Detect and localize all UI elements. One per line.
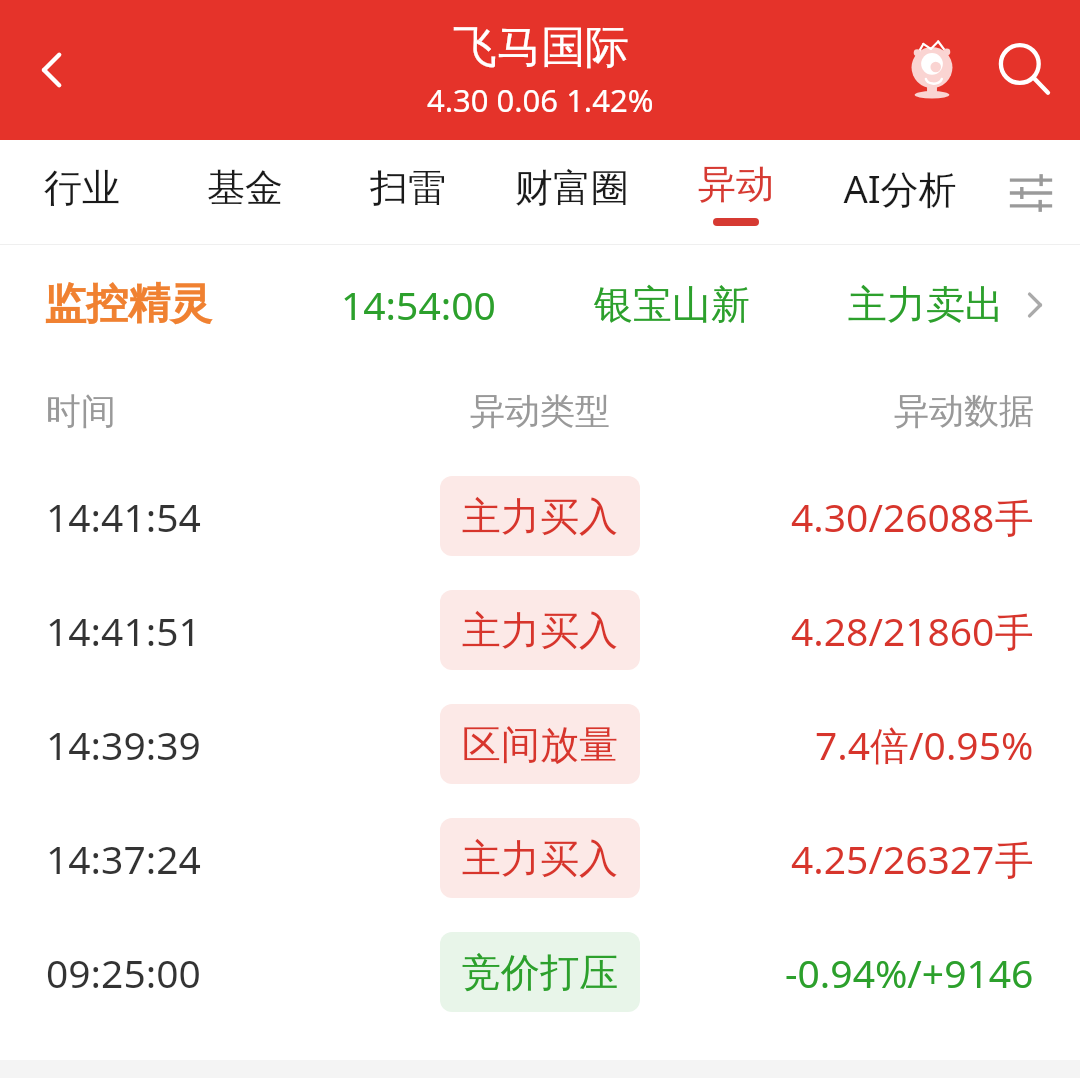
staticText: 4.30/26088手 — [791, 490, 1034, 543]
button[interactable]: 14:41:54 — [0, 459, 1080, 573]
staticText: 区间放量 — [462, 720, 618, 769]
staticText: 主力卖出 — [848, 280, 1004, 329]
staticText: 时间 — [46, 389, 116, 433]
staticText: 监控精灵 — [44, 278, 212, 331]
staticText: 飞马国际 — [453, 20, 629, 75]
button[interactable]: 09:25:00 — [0, 915, 1080, 1029]
button[interactable]: Search — [978, 24, 1070, 116]
staticText: 基金 — [207, 164, 283, 212]
staticText: 异动数据 — [894, 389, 1034, 433]
staticText: 14:41:51 — [46, 604, 201, 657]
staticText: 异动 — [698, 160, 774, 208]
staticText: 4.28/21860手 — [791, 604, 1034, 657]
staticText: 行业 — [44, 164, 120, 212]
button[interactable]: 扫雷 — [326, 140, 490, 245]
button[interactable]: Back — [14, 32, 90, 108]
button[interactable]: Assistant — [886, 24, 978, 116]
staticText: 14:39:39 — [46, 718, 201, 771]
staticText: 主力买入 — [462, 606, 618, 655]
button[interactable]: 14:39:39 — [0, 687, 1080, 801]
button[interactable]: AI分析 — [818, 140, 982, 245]
button[interactable]: 基金 — [163, 140, 326, 245]
staticText: 银宝山新 — [594, 280, 750, 329]
staticText: 财富圈 — [515, 164, 629, 212]
button[interactable]: 行业 — [0, 140, 163, 245]
staticText: 竞价打压 — [462, 948, 618, 997]
staticText: 14:37:24 — [46, 832, 201, 885]
button[interactable]: 14:37:24 — [0, 801, 1080, 915]
button[interactable]: 财富圈 — [490, 140, 654, 245]
staticText: 4.30 0.06 1.42% — [427, 79, 654, 121]
staticText: -0.94%/+9146 — [785, 946, 1034, 999]
staticText: 主力买入 — [462, 834, 618, 883]
staticText: 扫雷 — [370, 164, 446, 212]
staticText: 主力买入 — [462, 492, 618, 541]
staticText: 4.25/26327手 — [791, 832, 1034, 885]
staticText: 14:54:00 — [341, 278, 496, 331]
button[interactable]: Filter — [982, 140, 1080, 245]
staticText: 异动类型 — [470, 389, 610, 433]
staticText: AI分析 — [843, 162, 957, 214]
staticText: 09:25:00 — [46, 946, 201, 999]
button[interactable]: 异动 — [654, 140, 818, 245]
button[interactable]: 监控精灵 — [0, 245, 1080, 363]
button[interactable]: 14:41:51 — [0, 573, 1080, 687]
staticText: 14:41:54 — [46, 490, 201, 543]
staticText: 7.4倍/0.95% — [815, 718, 1034, 771]
